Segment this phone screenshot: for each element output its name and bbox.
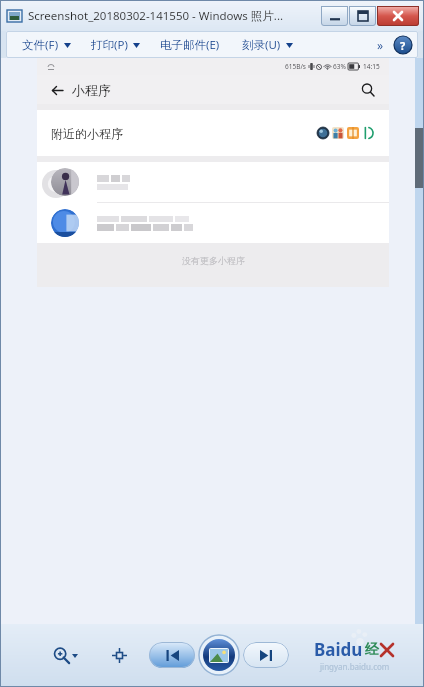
button[interactable]: Window button [321,6,348,26]
staticText: jingyan.baidu.com [320,661,390,672]
button[interactable]: 刻录(U) [240,35,295,55]
button[interactable]: Next [243,642,289,668]
button[interactable]: 电子邮件(E) [158,35,222,55]
button[interactable] [37,203,389,243]
button[interactable]: 文件(F) [20,35,73,55]
staticText: 没有更多小程序 [182,255,245,266]
button[interactable] [37,162,389,202]
button[interactable]: Fit to window [108,644,131,667]
staticText: 打印(P) [91,37,128,53]
staticText: ? [400,38,406,53]
button[interactable]: Slide show [199,635,239,675]
staticText: 小程序 [72,82,111,98]
staticText: 电子邮件(E) [160,37,220,53]
staticText: Screenshot_20180302-141550 - Windows 照片.… [28,8,284,24]
button[interactable]: More [372,37,388,53]
button[interactable]: Help [394,36,412,54]
button[interactable]: Zoom [49,643,82,668]
staticText: 14:15 [363,62,380,71]
staticText: 刻录(U) [242,37,281,53]
button[interactable]: Close [377,6,419,26]
staticText: 615B/s [285,62,306,71]
button[interactable]: 附近的小程序 [37,110,389,156]
staticText: 经 [365,641,379,659]
staticText: 附近的小程序 [51,126,123,141]
button[interactable]: Search [358,80,378,100]
staticText: » [377,37,384,53]
staticText: Baidu [314,638,363,661]
staticText: 文件(F) [22,37,59,53]
staticText: 63% [333,62,346,71]
button[interactable]: Back [47,78,115,102]
button[interactable]: 打印(P) [89,35,142,55]
button[interactable]: Window button [349,6,376,26]
button[interactable]: Previous [149,642,195,668]
